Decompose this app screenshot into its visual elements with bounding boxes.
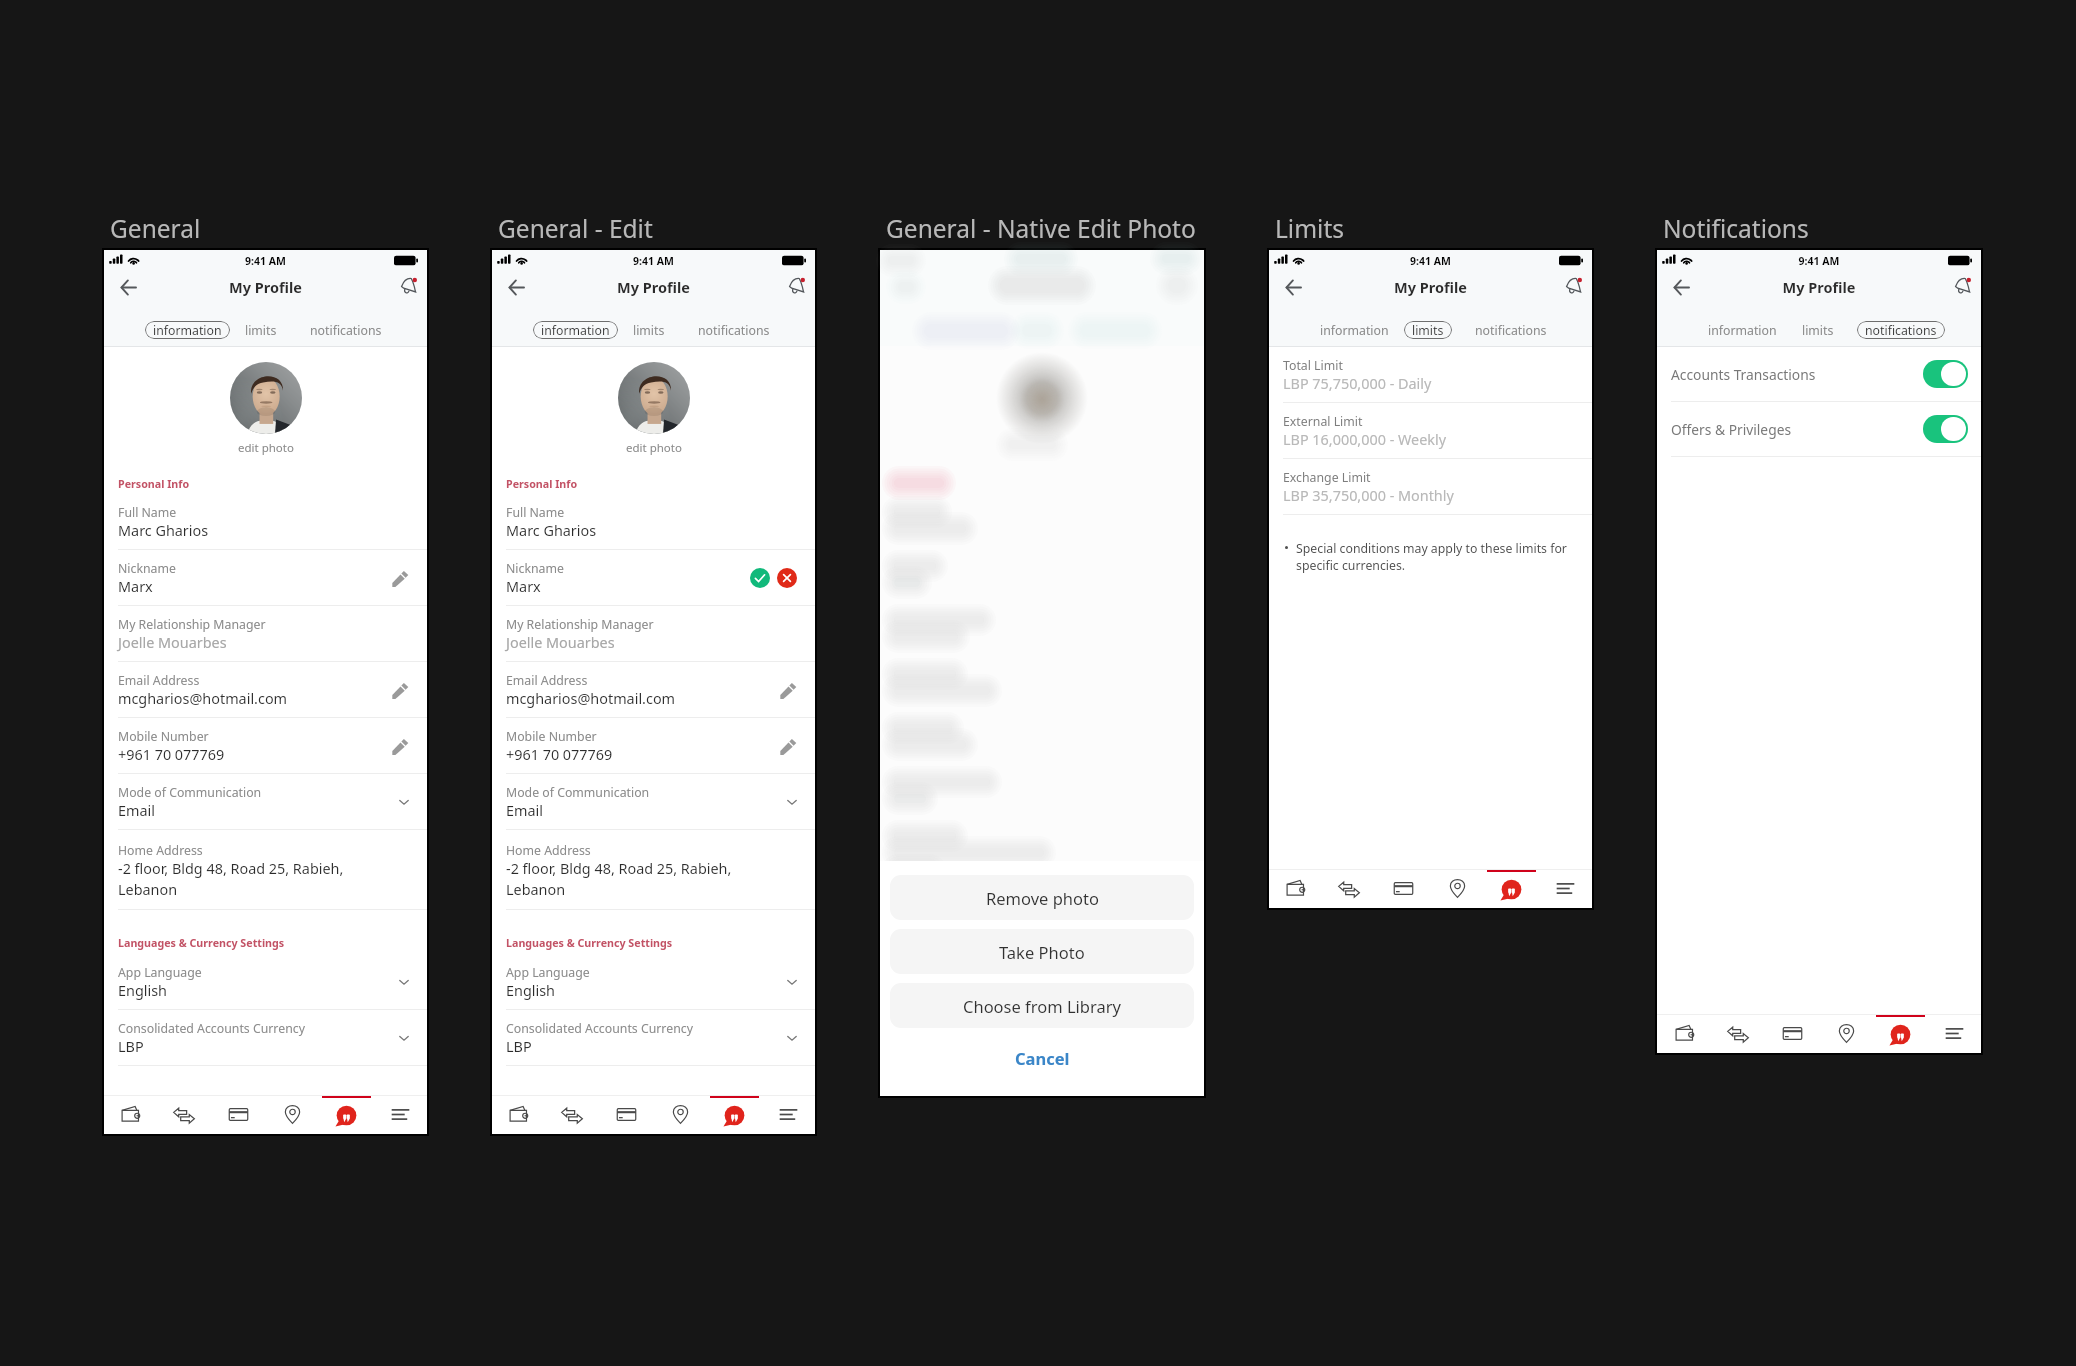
- button[interactable]: My Relationship Manager: [104, 615, 427, 671]
- button[interactable]: Cards: [1765, 1014, 1819, 1053]
- staticText: External Limit: [1283, 413, 1363, 430]
- button[interactable]: Locations: [653, 1095, 707, 1134]
- button[interactable]: Profile photo: [618, 362, 690, 456]
- button[interactable]: Toggle Accounts Transactions: [1923, 360, 1968, 388]
- button[interactable]: Accounts Transactions: [1657, 347, 1981, 402]
- button[interactable]: Email Address: [492, 671, 815, 727]
- button[interactable]: Transfers: [1322, 869, 1376, 908]
- button[interactable]: Offers & Privileges: [1657, 402, 1981, 457]
- button[interactable]: Messages: [1484, 869, 1538, 908]
- button[interactable]: Take Photo: [890, 929, 1194, 974]
- button[interactable]: Consolidated Accounts Currency: [104, 1019, 427, 1075]
- button[interactable]: Locations: [1430, 869, 1484, 908]
- button[interactable]: Choose from Library: [890, 983, 1194, 1028]
- button[interactable]: Messages: [319, 1095, 373, 1134]
- button[interactable]: Transfers: [157, 1095, 211, 1134]
- button[interactable]: More: [761, 1095, 815, 1134]
- button[interactable]: Nickname: [492, 559, 815, 615]
- staticText: Consolidated Accounts Currency: [506, 1020, 693, 1037]
- button[interactable]: Exchange Limit: [1269, 468, 1592, 524]
- button[interactable]: notifications: [1465, 321, 1557, 339]
- button[interactable]: Remove photo: [890, 875, 1194, 920]
- button[interactable]: Toggle Offers & Privileges: [1923, 415, 1968, 443]
- button[interactable]: Notifications: [396, 274, 421, 299]
- button[interactable]: notifications: [688, 321, 780, 339]
- button[interactable]: Locations: [1819, 1014, 1873, 1053]
- button[interactable]: limits: [1792, 321, 1844, 339]
- button[interactable]: Messages: [707, 1095, 761, 1134]
- staticText: LBP 75,750,000 - Daily: [1283, 374, 1432, 394]
- button[interactable]: Messages: [1873, 1014, 1927, 1053]
- button[interactable]: Profile photo: [618, 362, 690, 434]
- button[interactable]: Expand: [392, 1026, 416, 1050]
- button[interactable]: Edit: [392, 566, 416, 590]
- button[interactable]: Accounts: [1269, 869, 1322, 908]
- button[interactable]: limits: [235, 321, 287, 339]
- button[interactable]: notifications: [1857, 321, 1945, 339]
- button[interactable]: Back: [1278, 272, 1308, 302]
- button[interactable]: Cards: [211, 1095, 265, 1134]
- button[interactable]: Back: [1666, 272, 1696, 302]
- button[interactable]: Accounts: [492, 1095, 545, 1134]
- button[interactable]: Confirm: [750, 568, 770, 588]
- staticText: Nickname: [506, 560, 564, 577]
- button[interactable]: Cancel: [777, 568, 797, 588]
- button[interactable]: Edit: [780, 678, 804, 702]
- button[interactable]: Total Limit: [1269, 356, 1592, 412]
- button[interactable]: Notifications: [784, 274, 809, 299]
- staticText: notifications: [310, 322, 382, 339]
- staticText: Special conditions may apply to these li…: [1296, 540, 1578, 574]
- button[interactable]: limits: [623, 321, 675, 339]
- button[interactable]: External Limit: [1269, 412, 1592, 468]
- button[interactable]: More: [1538, 869, 1592, 908]
- button[interactable]: Email Address: [104, 671, 427, 727]
- button[interactable]: App Language: [104, 963, 427, 1019]
- button[interactable]: Expand: [780, 1026, 804, 1050]
- button[interactable]: Profile photo: [230, 362, 302, 456]
- button[interactable]: My Relationship Manager: [492, 615, 815, 671]
- button[interactable]: limits: [1404, 321, 1452, 339]
- button[interactable]: information: [145, 321, 230, 339]
- staticText: LBP: [506, 1037, 532, 1057]
- button[interactable]: Profile photo: [230, 362, 302, 434]
- button[interactable]: Notifications: [1561, 274, 1586, 299]
- button[interactable]: Full Name: [492, 503, 815, 559]
- button[interactable]: Expand: [392, 970, 416, 994]
- button[interactable]: Expand: [780, 790, 804, 814]
- button[interactable]: Cards: [599, 1095, 653, 1134]
- button[interactable]: information: [533, 321, 618, 339]
- button[interactable]: Nickname: [104, 559, 427, 615]
- button[interactable]: Consolidated Accounts Currency: [492, 1019, 815, 1075]
- staticText: My Profile: [104, 277, 427, 297]
- button[interactable]: Locations: [265, 1095, 319, 1134]
- button[interactable]: More: [373, 1095, 427, 1134]
- button[interactable]: Transfers: [1711, 1014, 1765, 1053]
- button[interactable]: Home Address: [104, 839, 427, 919]
- button[interactable]: Home Address: [492, 839, 815, 919]
- button[interactable]: Back: [501, 272, 531, 302]
- staticText: Remove photo: [986, 887, 1099, 909]
- button[interactable]: Expand: [392, 790, 416, 814]
- button[interactable]: Cards: [1376, 869, 1430, 908]
- button[interactable]: Accounts: [104, 1095, 157, 1134]
- button[interactable]: Mode of Communication: [104, 783, 427, 839]
- button[interactable]: Edit: [780, 734, 804, 758]
- button[interactable]: Full Name: [104, 503, 427, 559]
- button[interactable]: More: [1927, 1014, 1981, 1053]
- button[interactable]: Mobile Number: [492, 727, 815, 783]
- button[interactable]: notifications: [300, 321, 392, 339]
- button[interactable]: Mode of Communication: [492, 783, 815, 839]
- button[interactable]: Mobile Number: [104, 727, 427, 783]
- button[interactable]: Notifications: [1950, 274, 1975, 299]
- button[interactable]: Expand: [780, 970, 804, 994]
- button[interactable]: Back: [113, 272, 143, 302]
- button[interactable]: information: [1310, 321, 1399, 339]
- button[interactable]: Accounts: [1657, 1014, 1711, 1053]
- button[interactable]: information: [1698, 321, 1787, 339]
- button[interactable]: Edit: [392, 734, 416, 758]
- staticText: Email: [118, 801, 155, 821]
- button[interactable]: App Language: [492, 963, 815, 1019]
- button[interactable]: Transfers: [545, 1095, 599, 1134]
- button[interactable]: Cancel: [880, 1041, 1204, 1075]
- button[interactable]: Edit: [392, 678, 416, 702]
